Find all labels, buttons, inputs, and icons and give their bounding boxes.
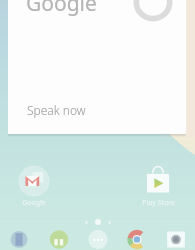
staticText: Google	[26, 0, 97, 18]
staticText: Play Store	[142, 198, 175, 208]
button[interactable]: Camera	[163, 229, 189, 250]
button[interactable]: Google	[8, 0, 186, 134]
button[interactable]: All apps	[85, 229, 111, 250]
button[interactable]: Messaging	[46, 229, 72, 250]
button[interactable]: Microphone	[134, 0, 172, 21]
staticText: Speak now	[27, 102, 86, 118]
button[interactable]: Google	[14, 166, 54, 208]
button[interactable]: Play Store	[135, 166, 181, 208]
button[interactable]: Chrome	[124, 229, 150, 250]
staticText: Google	[22, 198, 46, 208]
button[interactable]: Phone	[6, 229, 32, 250]
